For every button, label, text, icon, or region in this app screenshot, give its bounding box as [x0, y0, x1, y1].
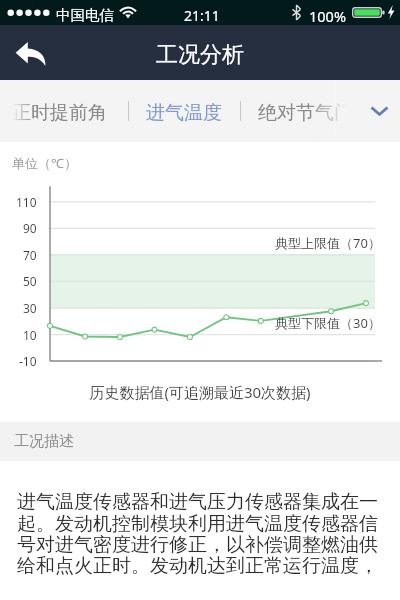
staticText: 50: [23, 273, 37, 289]
button[interactable]: 正时提前角: [0, 80, 126, 142]
staticText: 70: [23, 247, 37, 263]
staticText: 中国电信: [56, 6, 114, 24]
staticText: 历史数据值(可追溯最近30次数据): [0, 382, 400, 402]
staticText: 典型上限值（70）: [275, 234, 381, 252]
staticText: 30: [23, 300, 37, 316]
button[interactable]: More categories: [360, 80, 400, 142]
staticText: 110: [16, 194, 37, 210]
button[interactable]: 进气温度: [132, 80, 236, 142]
staticText: 21:11: [184, 6, 220, 25]
staticText: 单位（℃）: [12, 154, 77, 172]
staticText: 正时提前角: [12, 101, 107, 125]
staticText: 绝对节气门位置: [258, 101, 384, 125]
staticText: 工况描述: [14, 432, 74, 451]
staticText: -10: [19, 353, 37, 369]
button[interactable]: Back: [0, 25, 56, 80]
staticText: 90: [23, 220, 37, 236]
staticText: 进气温度传感器和进气压力传感器集成在一起。发动机控制模块利用进气温度传感器信号对…: [17, 490, 387, 577]
staticText: 进气温度: [146, 101, 222, 125]
button[interactable]: 绝对节气门位置: [241, 80, 367, 142]
staticText: 工况分析: [156, 41, 244, 69]
staticText: 100%: [309, 6, 346, 26]
staticText: 典型下限值（30）: [275, 314, 381, 332]
staticText: 10: [23, 327, 37, 343]
